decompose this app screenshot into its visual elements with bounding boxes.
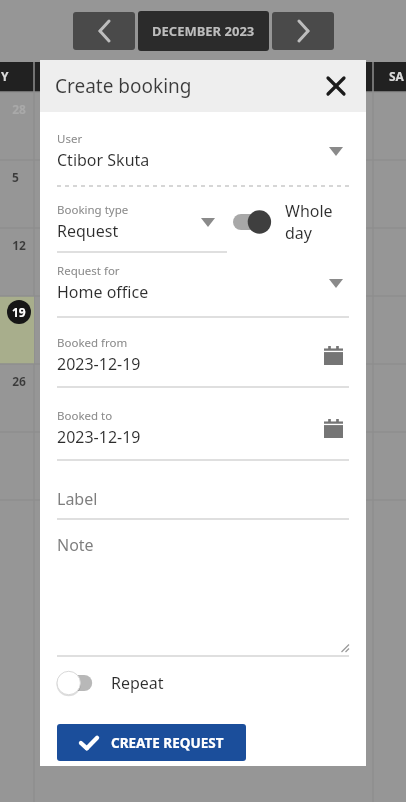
button[interactable]: DECEMBER 2023 bbox=[138, 11, 269, 51]
staticText: CREATE REQUEST bbox=[111, 734, 224, 752]
staticText: Create booking bbox=[55, 73, 318, 99]
button[interactable]: Pick date bbox=[317, 339, 349, 371]
button[interactable]: Label bbox=[57, 485, 349, 513]
staticText: Request bbox=[57, 220, 119, 242]
button[interactable]: Close bbox=[318, 68, 354, 104]
staticText: 2023-12-19 bbox=[57, 353, 141, 375]
button[interactable]: Note bbox=[57, 534, 349, 656]
button[interactable]: Open dropdown bbox=[323, 270, 349, 296]
button[interactable]: Open dropdown bbox=[323, 138, 349, 164]
staticText: 2023-12-19 bbox=[57, 426, 141, 448]
staticText: Home office bbox=[57, 281, 149, 303]
button[interactable]: Booked from bbox=[57, 335, 349, 375]
button[interactable]: Toggle off bbox=[57, 670, 164, 696]
button[interactable]: Next month bbox=[272, 12, 334, 50]
button[interactable]: User bbox=[57, 131, 349, 171]
button[interactable]: Booked to bbox=[57, 408, 349, 448]
button[interactable]: Request for bbox=[57, 263, 349, 303]
staticText: Repeat bbox=[111, 672, 164, 694]
button[interactable]: 19 bbox=[7, 300, 31, 324]
staticText: SA bbox=[389, 68, 404, 84]
button[interactable]: Toggle on bbox=[233, 200, 349, 244]
staticText: Booked from bbox=[57, 335, 128, 351]
staticText: Ctibor Skuta bbox=[57, 149, 150, 171]
button[interactable]: Open dropdown bbox=[195, 209, 221, 235]
button[interactable]: Pick date bbox=[317, 412, 349, 444]
staticText: Booking type bbox=[57, 202, 129, 218]
staticText: Request for bbox=[57, 263, 120, 279]
staticText: Note bbox=[57, 534, 94, 556]
staticText: User bbox=[57, 131, 83, 147]
staticText: DECEMBER 2023 bbox=[152, 22, 255, 40]
staticText: Whole day bbox=[285, 200, 349, 244]
button[interactable]: 12 bbox=[12, 237, 26, 253]
button[interactable]: CREATE REQUEST bbox=[57, 724, 246, 761]
staticText: Booked to bbox=[57, 408, 113, 424]
button[interactable]: Previous month bbox=[73, 12, 135, 50]
staticText: Label bbox=[57, 488, 98, 510]
button[interactable]: 26 bbox=[12, 373, 26, 389]
button[interactable]: Toggle off bbox=[57, 670, 101, 696]
staticText: Y bbox=[1, 68, 9, 84]
button[interactable]: 28 bbox=[12, 101, 26, 117]
staticText: 19 bbox=[12, 304, 26, 320]
button[interactable]: 5 bbox=[12, 169, 19, 185]
button[interactable]: Booking type bbox=[57, 202, 189, 242]
button[interactable]: Toggle on bbox=[233, 209, 277, 235]
